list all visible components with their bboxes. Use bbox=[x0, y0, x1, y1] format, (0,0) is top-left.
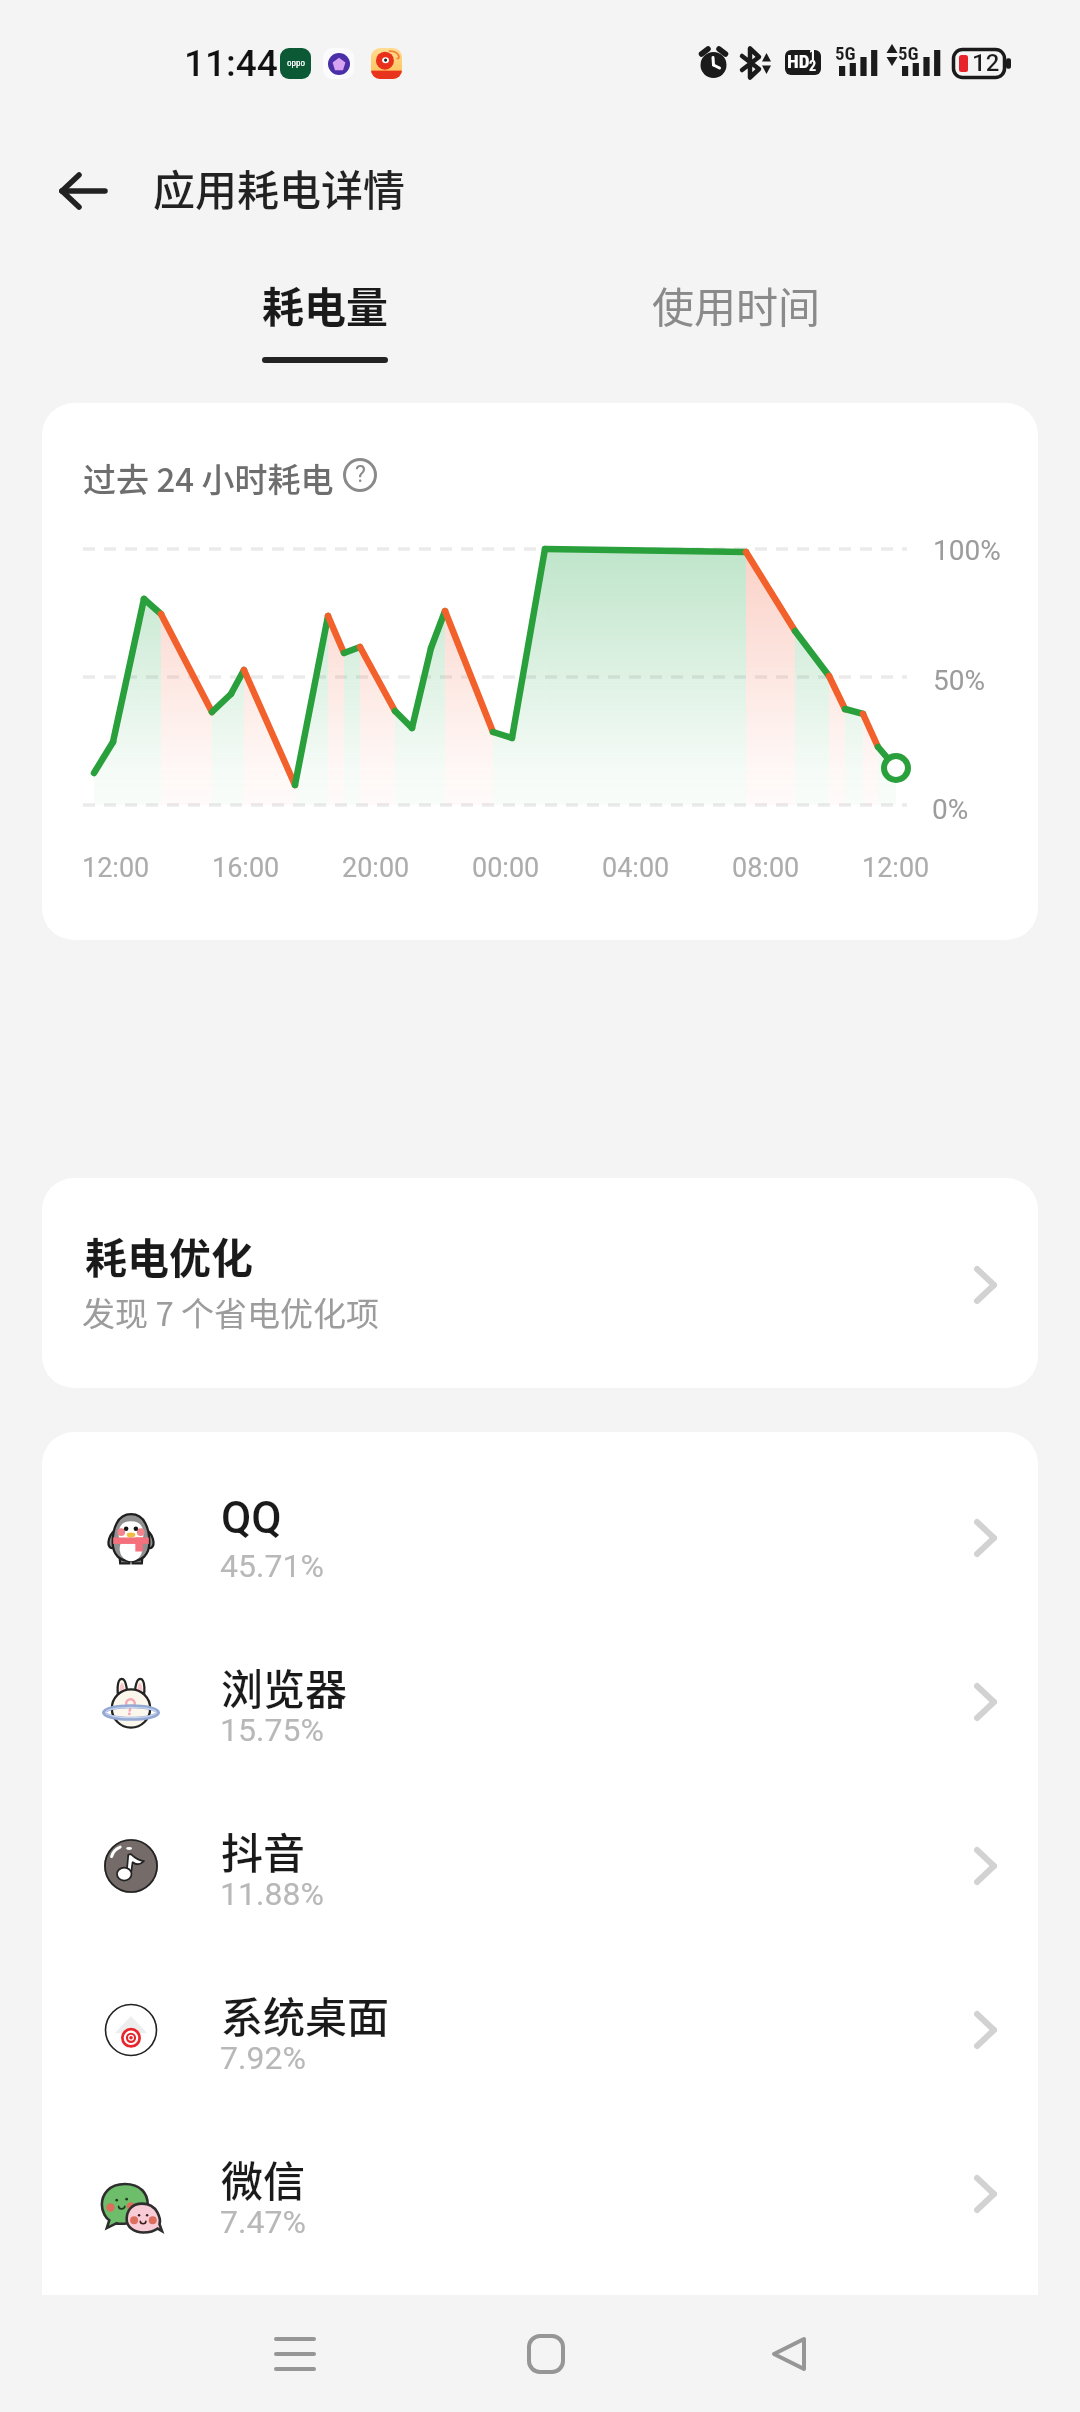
staticText: 15.75% bbox=[220, 1711, 324, 1749]
button[interactable]: 浏览器 bbox=[42, 1618, 1038, 1782]
staticText: 12:00 bbox=[82, 852, 150, 884]
staticText: HD bbox=[787, 50, 810, 72]
staticText: 浏览器 bbox=[221, 1656, 348, 1717]
staticText: 0% bbox=[932, 793, 969, 826]
staticText: 系统桌面 bbox=[221, 1984, 390, 2045]
staticText: 耗电量 bbox=[262, 274, 389, 335]
staticText: 7.92% bbox=[220, 2039, 306, 2077]
staticText: 5G bbox=[898, 42, 919, 64]
staticText: 100% bbox=[933, 534, 1001, 567]
button[interactable]: 耗电优化 bbox=[42, 1178, 1038, 1388]
staticText: 12:00 bbox=[862, 852, 930, 884]
staticText: ? bbox=[355, 461, 366, 488]
staticText: 2 bbox=[809, 58, 817, 74]
staticText: 发现 7 个省电优化项 bbox=[82, 1288, 380, 1336]
button[interactable]: 微信 bbox=[42, 2110, 1038, 2274]
staticText: 00:00 bbox=[472, 852, 540, 884]
staticText: 45.71% bbox=[220, 1547, 324, 1585]
staticText: oppo bbox=[287, 58, 305, 69]
staticText: 7.47% bbox=[220, 2203, 306, 2241]
staticText: 微信 bbox=[221, 2148, 306, 2209]
staticText: 04:00 bbox=[602, 852, 670, 884]
staticText: 50% bbox=[933, 664, 985, 697]
staticText: 使用时间 bbox=[652, 274, 821, 335]
staticText: 5G bbox=[835, 42, 856, 64]
staticText: 11.88% bbox=[220, 1875, 324, 1913]
staticText: 耗电优化 bbox=[85, 1225, 254, 1286]
staticText: 11:44 bbox=[184, 42, 278, 85]
button[interactable]: Home bbox=[486, 2295, 606, 2412]
button[interactable]: Help bbox=[336, 451, 384, 499]
button[interactable]: 耗电量 bbox=[202, 250, 448, 390]
staticText: 应用耗电详情 bbox=[153, 157, 406, 218]
staticText: 12 bbox=[972, 49, 1000, 77]
button[interactable]: 抖音 bbox=[42, 1782, 1038, 1946]
staticText: 20:00 bbox=[342, 852, 410, 884]
staticText: 抖音 bbox=[221, 1820, 306, 1881]
staticText: QQ bbox=[221, 1492, 282, 1544]
button[interactable]: 使用时间 bbox=[592, 250, 874, 390]
staticText: 1 bbox=[809, 50, 817, 63]
button[interactable]: Recents bbox=[235, 2295, 355, 2412]
staticText: 16:00 bbox=[212, 852, 280, 884]
staticText: 08:00 bbox=[732, 852, 800, 884]
staticText: 过去 24 小时耗电 bbox=[83, 454, 334, 502]
button[interactable]: 系统桌面 bbox=[42, 1946, 1038, 2110]
button[interactable]: Back bbox=[729, 2295, 849, 2412]
button[interactable]: Back bbox=[36, 146, 130, 236]
button[interactable]: QQ bbox=[42, 1454, 1038, 1618]
